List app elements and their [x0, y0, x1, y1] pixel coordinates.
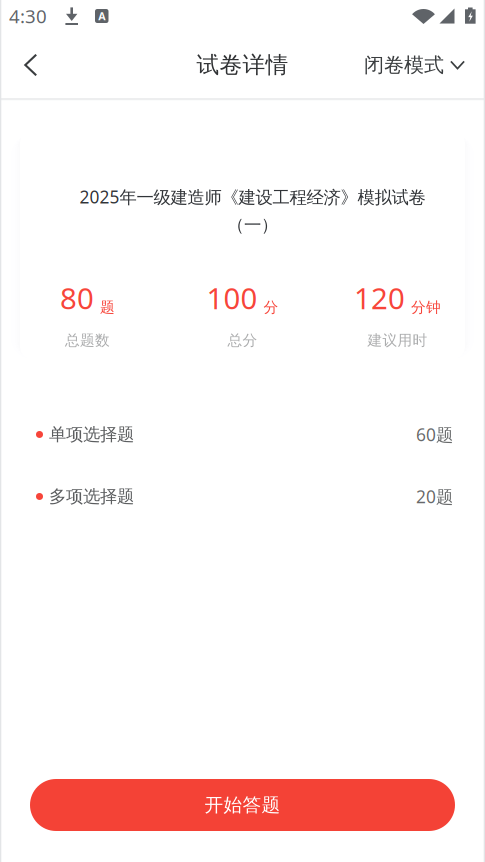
- staticText: 分: [263, 298, 278, 316]
- staticText: 总分: [227, 331, 257, 349]
- staticText: 4:30: [9, 4, 47, 28]
- staticText: 题: [100, 298, 115, 316]
- staticText: 多项选择题: [49, 486, 134, 507]
- button[interactable]: 单项选择题: [0, 403, 485, 465]
- staticText: 试卷详情: [196, 51, 288, 79]
- button[interactable]: 开始答题: [0, 779, 485, 831]
- staticText: （一）: [227, 214, 278, 235]
- staticText: 分钟: [411, 298, 441, 316]
- staticText: 单项选择题: [49, 424, 134, 445]
- staticText: 建议用时: [367, 331, 427, 349]
- staticText: 60题: [416, 423, 453, 446]
- staticText: 20题: [416, 485, 453, 508]
- staticText: A: [98, 9, 105, 23]
- staticText: 闭卷模式: [364, 53, 444, 77]
- staticText: 总题数: [65, 331, 110, 349]
- button[interactable]: Back: [0, 32, 56, 98]
- staticText: 2025年一级建造师《建设工程经济》模拟试卷: [79, 185, 425, 208]
- button[interactable]: 多项选择题: [0, 465, 485, 527]
- staticText: 120: [354, 278, 405, 317]
- button[interactable]: 闭卷模式: [348, 32, 485, 98]
- staticText: 100: [206, 278, 257, 317]
- staticText: 80: [60, 278, 94, 317]
- staticText: 开始答题: [204, 793, 280, 816]
